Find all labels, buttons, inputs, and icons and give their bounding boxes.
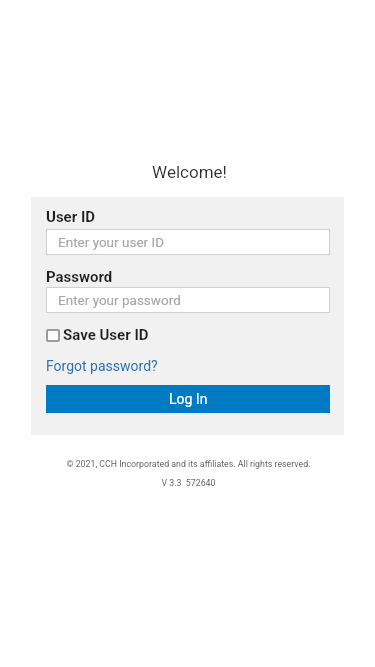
staticText: © 2021, CCH Incorporated and its affilia… xyxy=(1,459,375,469)
staticText: Welcome! xyxy=(2,162,375,182)
staticText: Save User ID xyxy=(63,326,149,344)
staticText: User ID xyxy=(46,208,96,226)
staticText: Password xyxy=(46,268,113,286)
staticText: V 3.3 572640 xyxy=(1,478,375,488)
button[interactable]: Enter your password xyxy=(46,287,330,313)
staticText: Forgot password? xyxy=(46,358,158,374)
button[interactable]: Forgot password? xyxy=(46,358,158,374)
staticText: Enter your password xyxy=(58,292,181,308)
button[interactable]: Save User ID checkbox xyxy=(46,326,149,344)
staticText: Log In xyxy=(169,391,208,407)
staticText: Enter your user ID xyxy=(58,234,165,250)
button[interactable]: Enter your user ID xyxy=(46,229,330,255)
button[interactable]: Log In xyxy=(46,385,330,413)
